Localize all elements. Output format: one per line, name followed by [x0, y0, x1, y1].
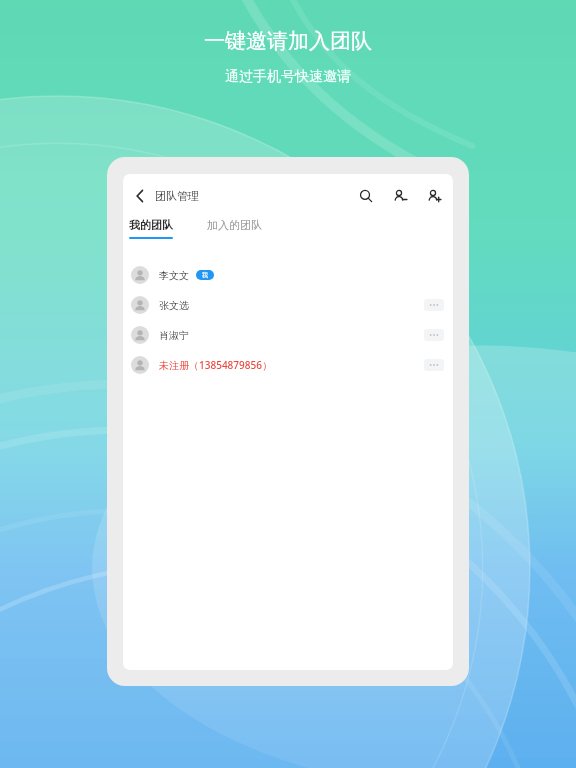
staticText: 一键邀请加入团队 [204, 28, 372, 54]
button[interactable]: 加入的团队 [203, 218, 266, 237]
button[interactable]: Search [355, 185, 377, 207]
staticText: 团队管理 [155, 189, 199, 203]
button[interactable]: 李文文 [123, 260, 453, 290]
button[interactable]: More options [424, 299, 444, 311]
button[interactable]: 我的团队 [125, 218, 177, 239]
button[interactable]: Back [125, 181, 155, 211]
button[interactable]: 张文选 [123, 290, 453, 320]
staticText: 李文文 [159, 269, 189, 282]
staticText: 加入的团队 [207, 218, 262, 232]
staticText: 我的团队 [129, 218, 173, 232]
staticText: 肖淑宁 [159, 329, 189, 342]
button[interactable]: More options [424, 329, 444, 341]
button[interactable]: Remove member [389, 185, 411, 207]
button[interactable]: 未注册（13854879856） [123, 350, 453, 380]
staticText: 张文选 [159, 299, 189, 312]
button[interactable]: Add member [423, 185, 445, 207]
button[interactable]: More options [424, 359, 444, 371]
staticText: 未注册（13854879856） [159, 358, 272, 372]
staticText: 通过手机号快速邀请 [225, 68, 351, 86]
button[interactable]: 肖淑宁 [123, 320, 453, 350]
staticText: 我 [202, 271, 208, 279]
